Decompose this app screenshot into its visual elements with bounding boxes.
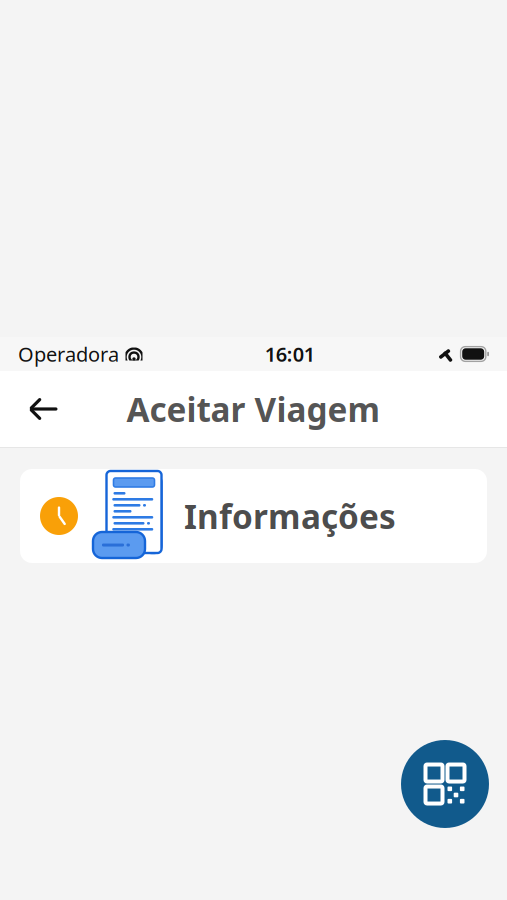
staticText: 16:01	[265, 341, 315, 367]
button[interactable]: Informações	[20, 469, 487, 563]
button[interactable]: Voltar	[16, 381, 72, 437]
staticText: Operadora	[18, 341, 119, 367]
staticText: Informações	[184, 494, 396, 538]
staticText: Aceitar Viagem	[126, 387, 380, 431]
button[interactable]: Ler QR Code	[401, 740, 489, 828]
